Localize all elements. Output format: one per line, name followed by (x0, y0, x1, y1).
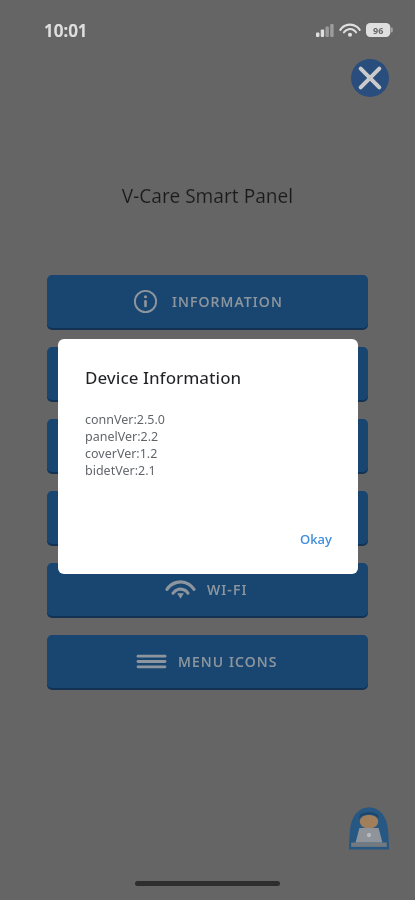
staticText: WI-FI (207, 580, 248, 599)
button[interactable]: WI-FI (47, 563, 368, 616)
button[interactable]: Close (351, 59, 389, 97)
button[interactable]: INFORMATION (47, 275, 368, 328)
button[interactable]: Panel action (47, 491, 368, 544)
button[interactable]: Developer mode (345, 802, 393, 850)
staticText: bidetVer:2.1 (85, 462, 156, 479)
staticText: coverVer:1.2 (85, 445, 158, 462)
staticText: 96 (373, 24, 384, 36)
button[interactable]: Okay (294, 526, 338, 552)
button[interactable]: Panel action (47, 347, 368, 400)
staticText: panelVer:2.2 (85, 428, 159, 445)
button[interactable]: Panel action (47, 419, 368, 472)
staticText: connVer:2.5.0 (85, 411, 165, 428)
staticText: V-Care Smart Panel (0, 183, 415, 209)
staticText: Device Information (85, 366, 242, 389)
staticText: Okay (300, 530, 332, 548)
button[interactable]: MENU ICONS (47, 635, 368, 688)
staticText: MENU ICONS (178, 652, 278, 671)
staticText: INFORMATION (172, 292, 283, 311)
staticText: 10:01 (44, 19, 88, 42)
